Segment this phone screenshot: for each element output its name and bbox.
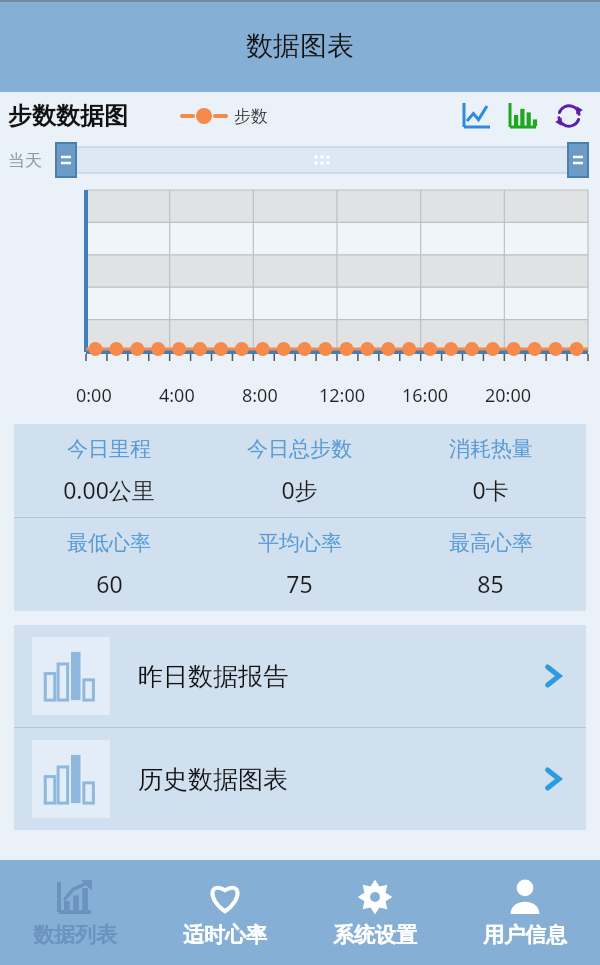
button[interactable]: 数据列表 xyxy=(0,860,150,965)
staticText: 8:00 xyxy=(242,383,278,408)
staticText: 75 xyxy=(286,568,313,599)
staticText: 最高心率 xyxy=(449,530,533,556)
staticText: 16:00 xyxy=(402,383,449,408)
button[interactable] xyxy=(56,143,588,177)
staticText: 20:00 xyxy=(485,383,532,408)
staticText: 适时心率 xyxy=(183,922,267,948)
button[interactable]: 昨日数据报告 xyxy=(14,625,586,727)
staticText: 历史数据图表 xyxy=(138,764,288,795)
staticText: 数据图表 xyxy=(246,29,354,63)
button[interactable]: 折线图 xyxy=(460,99,494,133)
staticText: 0卡 xyxy=(472,474,509,505)
staticText: 85 xyxy=(477,568,504,599)
button[interactable]: 用户信息 xyxy=(450,860,600,965)
staticText: 0:00 xyxy=(76,383,112,408)
staticText: 0.00公里 xyxy=(63,474,155,505)
staticText: 数据列表 xyxy=(33,922,117,948)
staticText: 今日总步数 xyxy=(247,436,352,462)
button[interactable]: 系统设置 xyxy=(300,860,450,965)
staticText: 60 xyxy=(96,568,123,599)
staticText: 用户信息 xyxy=(483,922,567,948)
staticText: 12:00 xyxy=(319,383,366,408)
button[interactable]: 适时心率 xyxy=(150,860,300,965)
staticText: 4:00 xyxy=(159,383,195,408)
staticText: 步数数据图 xyxy=(8,101,128,131)
button[interactable]: 历史数据图表 xyxy=(14,728,586,830)
staticText: 最低心率 xyxy=(67,530,151,556)
button[interactable]: 柱状图 xyxy=(506,99,540,133)
staticText: 今日里程 xyxy=(67,436,151,462)
staticText: 0步 xyxy=(281,474,318,505)
staticText: 步数 xyxy=(234,106,268,127)
staticText: 系统设置 xyxy=(333,922,417,948)
staticText: 消耗热量 xyxy=(449,436,533,462)
button[interactable]: 刷新 xyxy=(552,99,586,133)
staticText: 当天 xyxy=(8,150,42,171)
staticText: 昨日数据报告 xyxy=(138,661,288,692)
staticText: 平均心率 xyxy=(258,530,342,556)
